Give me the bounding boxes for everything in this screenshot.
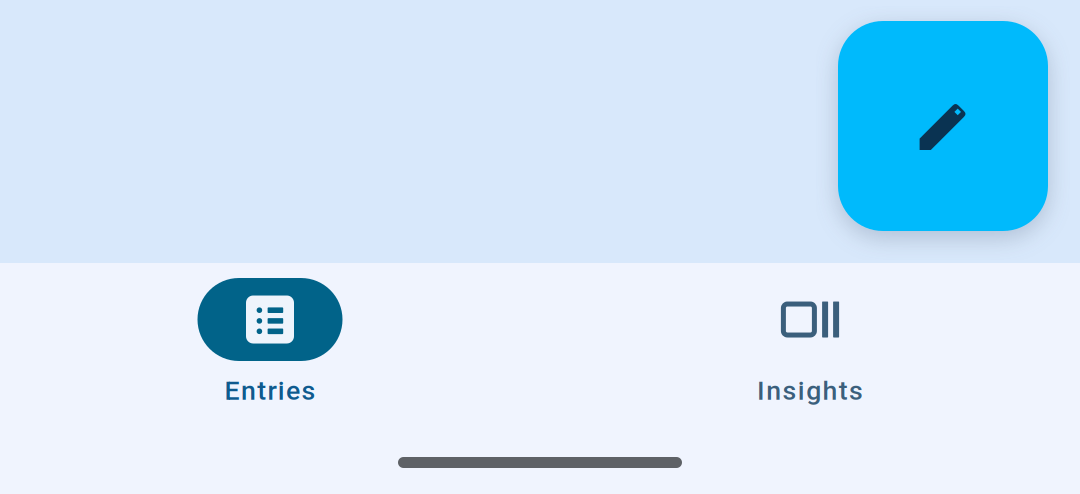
- button[interactable]: New entry: [838, 21, 1048, 231]
- button[interactable]: Entries: [0, 278, 540, 406]
- staticText: Insights: [757, 375, 863, 406]
- button[interactable]: Insights: [540, 278, 1080, 406]
- staticText: Entries: [225, 375, 315, 406]
